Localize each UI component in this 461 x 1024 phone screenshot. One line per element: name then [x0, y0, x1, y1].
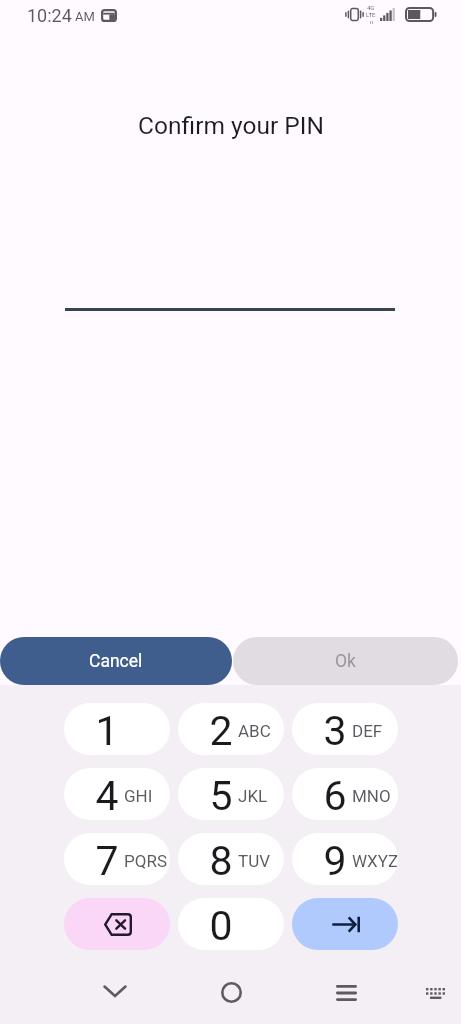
button[interactable]: 7	[64, 833, 170, 885]
staticText: TUV	[238, 851, 270, 871]
button[interactable]: 6	[292, 768, 398, 820]
button[interactable]: Ok	[233, 637, 458, 685]
staticText: ıı	[370, 18, 373, 25]
staticText: MNO	[352, 786, 391, 806]
button[interactable]: Backspace	[64, 898, 170, 950]
button[interactable]: 8	[178, 833, 284, 885]
staticText: 4G	[367, 4, 375, 11]
staticText: PQRS	[124, 851, 167, 871]
button[interactable]: 0	[178, 898, 284, 950]
staticText: 1	[95, 707, 119, 755]
button[interactable]: 2	[178, 703, 284, 755]
button[interactable]: Next	[292, 898, 398, 950]
button[interactable]: Recents	[318, 951, 374, 1024]
staticText: 8	[209, 837, 233, 885]
button[interactable]: 9	[292, 833, 398, 885]
button[interactable]: Hide keyboard	[87, 951, 143, 1024]
staticText: Confirm your PIN	[138, 111, 324, 140]
staticText: 9	[323, 837, 347, 885]
staticText: JKL	[238, 786, 268, 806]
staticText: Cancel	[89, 651, 143, 672]
staticText: 4	[95, 772, 119, 820]
staticText: 10:24	[27, 5, 72, 26]
staticText: DEF	[352, 721, 383, 741]
staticText: WXYZ	[352, 851, 398, 871]
staticText: 6	[323, 772, 347, 820]
staticText: 7	[95, 837, 119, 885]
button[interactable]: 3	[292, 703, 398, 755]
button[interactable]: Cancel	[0, 637, 232, 685]
button[interactable]: Switch keyboard	[407, 951, 461, 1024]
staticText: 0	[209, 902, 233, 950]
staticText: Ok	[335, 651, 356, 672]
staticText: 5	[209, 772, 233, 820]
staticText: 3	[323, 707, 347, 755]
button[interactable]: Home	[203, 951, 259, 1024]
staticText: LTE	[366, 11, 376, 18]
staticText: AM	[75, 9, 95, 24]
button[interactable]: 1	[64, 703, 170, 755]
button[interactable]: 4	[64, 768, 170, 820]
staticText: 2	[209, 707, 233, 755]
staticText: GHI	[124, 786, 153, 806]
staticText: ABC	[238, 721, 271, 741]
button[interactable]: 5	[178, 768, 284, 820]
